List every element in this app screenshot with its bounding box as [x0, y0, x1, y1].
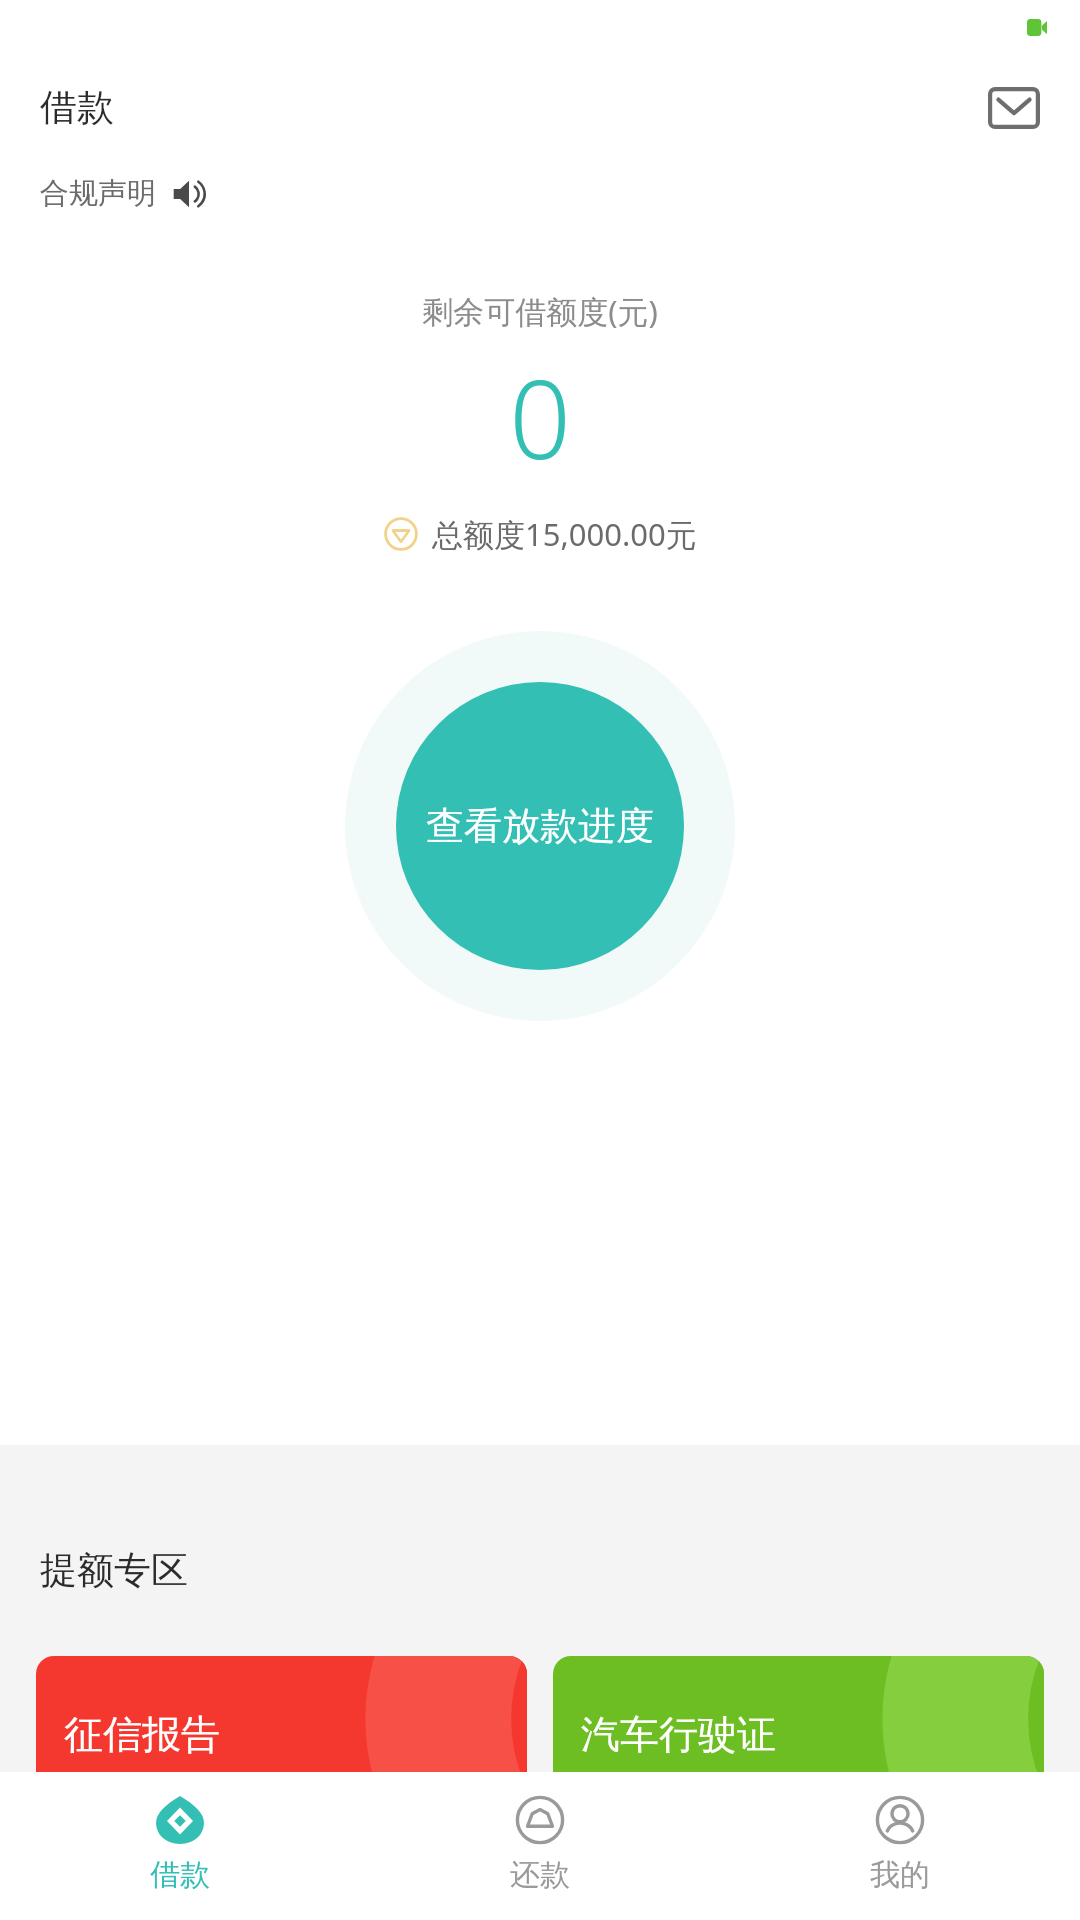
staticText: 借款 — [150, 1856, 210, 1894]
staticText: 大额提升额度5倍 — [581, 1771, 771, 1805]
staticText: 查看放款进度 — [426, 802, 654, 850]
staticText: 征信报告 — [64, 1710, 220, 1759]
button[interactable]: 征信报告 — [36, 1656, 527, 1866]
button[interactable]: 还款 — [360, 1772, 720, 1920]
button[interactable]: 我的 — [720, 1772, 1080, 1920]
button[interactable]: 查看放款进度 — [396, 682, 684, 970]
staticText: 汽车行驶证 — [581, 1710, 776, 1759]
staticText: 总额度15,000.00元 — [432, 513, 697, 555]
button[interactable]: 合规声明 — [40, 175, 206, 212]
staticText: 我的 — [870, 1856, 930, 1894]
staticText: 日享积利10000元额度 — [64, 1771, 311, 1805]
staticText: 提额专区 — [40, 1547, 188, 1594]
staticText: 剩余可借额度(元) — [0, 290, 1080, 332]
button[interactable]: 汽车行驶证 — [553, 1656, 1044, 1866]
staticText: 合规声明 — [40, 175, 156, 212]
button[interactable]: 借款 — [0, 1772, 360, 1920]
button[interactable]: Messages — [984, 78, 1044, 138]
staticText: 借款 — [40, 84, 114, 131]
staticText: 0 — [0, 344, 1080, 491]
staticText: 还款 — [510, 1856, 570, 1894]
